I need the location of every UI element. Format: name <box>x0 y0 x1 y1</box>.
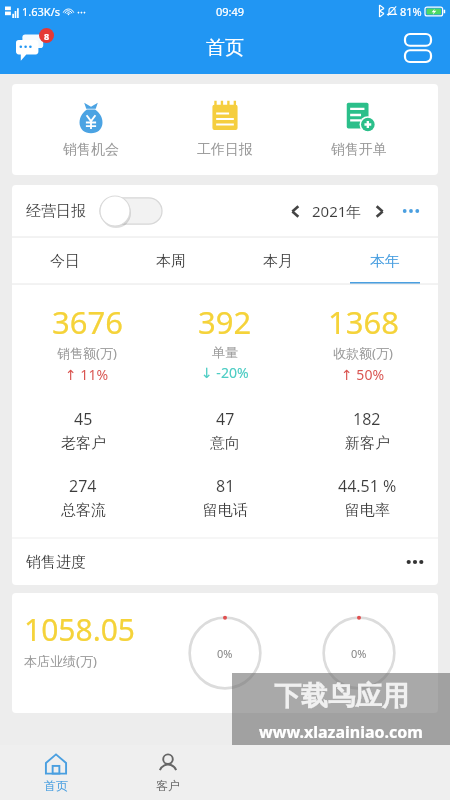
button[interactable]: 本月 <box>224 238 331 284</box>
button[interactable]: 392 <box>156 301 294 382</box>
staticText: 1058.05 <box>24 609 135 650</box>
staticText: 老客户 <box>61 434 106 453</box>
staticText: 本店业绩(万) <box>24 652 97 670</box>
staticText: 本年 <box>370 252 400 271</box>
button[interactable]: 182 <box>296 408 438 453</box>
staticText: 45 <box>74 408 93 430</box>
staticText: 客户 <box>156 778 180 793</box>
staticText: 392 <box>198 301 252 343</box>
staticText: ↑ 11% <box>65 365 109 384</box>
staticText: 本月 <box>263 252 293 271</box>
staticText: 本周 <box>156 252 186 271</box>
staticText: 单量 <box>212 344 238 360</box>
staticText: 今日 <box>50 252 80 271</box>
button[interactable]: 首页 <box>0 745 112 800</box>
staticText: 0% <box>351 646 367 661</box>
staticText: 09:49 <box>216 4 245 19</box>
button[interactable]: More options <box>398 198 424 224</box>
button[interactable]: 1368 <box>294 301 432 384</box>
button[interactable]: 今日 <box>12 238 118 284</box>
staticText: 274 <box>69 475 97 497</box>
button[interactable]: 44.51 % <box>296 475 438 520</box>
button[interactable]: Messages, 8 unread <box>8 24 56 72</box>
staticText: www.xlazainiao.com <box>259 721 423 743</box>
button[interactable]: 45 <box>12 408 154 453</box>
staticText: ↑ 50% <box>341 365 385 384</box>
button[interactable]: 本年 <box>331 238 438 284</box>
staticText: 1368 <box>328 301 399 343</box>
staticText: 81 <box>216 475 235 497</box>
staticText: 销售机会 <box>63 141 119 159</box>
button[interactable]: 47 <box>154 408 296 453</box>
button[interactable]: Toggle daily report <box>100 196 162 226</box>
button[interactable]: 274 <box>12 475 154 520</box>
staticText: 新客户 <box>345 434 390 453</box>
staticText: 0% <box>217 646 233 661</box>
button[interactable]: 81 <box>154 475 296 520</box>
button[interactable]: 工作日报 <box>170 98 280 161</box>
staticText: 81% <box>400 4 422 19</box>
button[interactable]: 客户 <box>112 745 224 800</box>
staticText: 182 <box>353 408 381 430</box>
button[interactable]: Layout <box>396 26 440 70</box>
staticText: 销售进度 <box>26 553 86 572</box>
staticText: 2021年 <box>312 201 362 221</box>
staticText: 销售开单 <box>331 141 387 159</box>
staticText: 8 <box>44 30 50 42</box>
staticText: ↓ -20% <box>201 363 249 382</box>
staticText: 总客流 <box>61 501 106 520</box>
staticText: 留电话 <box>203 501 248 520</box>
button[interactable]: 本周 <box>118 238 224 284</box>
button[interactable]: 3676 <box>18 301 156 384</box>
staticText: 收款额(万) <box>333 344 393 362</box>
staticText: 首页 <box>44 778 68 793</box>
staticText: 3676 <box>52 301 123 343</box>
button[interactable]: 销售开单 <box>304 98 414 161</box>
staticText: 首页 <box>206 36 244 60</box>
staticText: ··· <box>77 4 86 19</box>
button[interactable]: 销售进度 <box>12 539 438 585</box>
staticText: 留电率 <box>345 501 390 520</box>
staticText: 47 <box>216 408 235 430</box>
staticText: 工作日报 <box>197 141 253 159</box>
staticText: 销售额(万) <box>57 344 117 362</box>
staticText: 44.51 % <box>338 475 397 497</box>
staticText: 意向 <box>210 434 240 453</box>
button[interactable]: Previous year <box>282 198 308 224</box>
staticText: 下载鸟应用 <box>274 679 409 713</box>
button[interactable]: Next year <box>366 198 392 224</box>
staticText: 经营日报 <box>26 202 86 221</box>
staticText: 1.63K/s <box>22 4 60 19</box>
button[interactable]: 销售机会 <box>36 98 146 161</box>
